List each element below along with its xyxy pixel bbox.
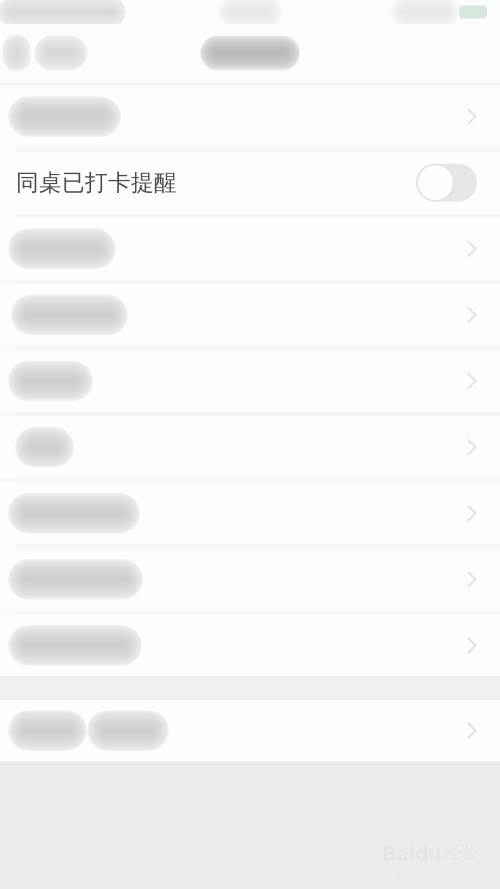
button[interactable] — [0, 350, 500, 411]
staticText: 同桌已打卡提醒 — [16, 169, 177, 196]
button[interactable] — [0, 417, 500, 478]
button[interactable]: Back — [0, 30, 90, 76]
button[interactable] — [0, 700, 500, 761]
staticText: Baidu — [382, 838, 442, 867]
button[interactable] — [0, 218, 500, 279]
button[interactable] — [0, 483, 500, 544]
button[interactable] — [0, 549, 500, 610]
button[interactable] — [0, 615, 500, 676]
button[interactable] — [0, 284, 500, 345]
button[interactable]: 同桌已打卡提醒 — [0, 152, 500, 213]
button[interactable] — [0, 86, 500, 147]
